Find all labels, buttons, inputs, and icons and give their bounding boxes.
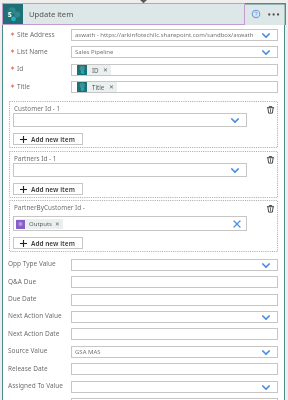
staticText: List Name [17,47,48,56]
button[interactable] [71,398,278,400]
staticText: ∗ [10,64,16,71]
button[interactable]: Delete [266,105,275,114]
button[interactable]: aswath - https://arkinfotechllc.sharepoi… [71,29,278,41]
staticText: Source Value [8,346,48,355]
button[interactable]: Sales Pipeline [71,46,278,58]
button[interactable]: Delete [266,204,275,213]
staticText: GSA MAS [75,348,101,356]
button[interactable] [71,276,278,288]
staticText: S [8,10,12,19]
staticText: Sales Pipeline [75,48,114,56]
staticText: Partners Id - 1 [14,154,57,163]
staticText: ID [92,66,99,74]
staticText: ✕ [55,221,60,228]
button[interactable] [71,328,278,340]
button[interactable]: Add new item [13,237,83,249]
staticText: ∗ [10,47,16,54]
staticText: Outputs [29,220,52,228]
button[interactable]: ID [71,64,278,76]
staticText: aswath - https://arkinfotechllc.sharepoi… [75,31,254,39]
button[interactable]: Help [248,6,264,22]
staticText: Update item [29,9,74,19]
staticText: Title [17,82,30,91]
staticText: Customer Id - 1 [14,104,61,113]
staticText: Next Action Value [8,311,62,320]
staticText: Release Date [8,364,48,373]
staticText: PartnerByCustomer Id - [14,203,85,212]
staticText: ∗ [10,82,16,89]
button[interactable] [13,163,247,177]
button[interactable] [71,363,278,375]
button[interactable]: Title [71,81,278,93]
button[interactable]: GSA MAS [71,346,278,358]
button[interactable]: Delete [266,155,275,164]
staticText: ∗ [10,30,16,37]
staticText: Opp Type Value [8,259,56,268]
staticText: Id [17,64,24,73]
button[interactable]: Add new item [13,133,83,145]
button[interactable]: Add new item [13,183,83,195]
staticText: ✕ [103,67,108,74]
staticText: Due Date [8,294,37,303]
staticText: Site Address [17,30,55,39]
button[interactable] [13,113,247,127]
staticText: Add new item [31,185,75,194]
staticText: ✕ [109,84,114,91]
staticText: Title [92,83,105,91]
button[interactable] [71,381,278,393]
staticText: Add new item [31,239,75,248]
button[interactable] [71,294,278,306]
staticText: Next Action Date [8,329,60,338]
button[interactable] [71,259,278,271]
button[interactable]: More commands [264,6,282,24]
staticText: Add new item [31,135,75,144]
button[interactable]: S [2,3,245,25]
staticText: Assigned To Value [8,381,63,390]
staticText: Q&A Due [8,277,37,286]
button[interactable] [71,311,278,323]
button[interactable]: Outputs [13,216,247,231]
